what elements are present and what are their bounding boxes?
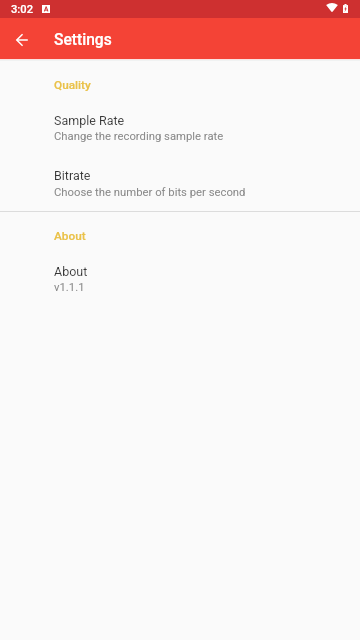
staticText: About [54, 229, 86, 243]
staticText: Settings [54, 31, 112, 49]
staticText: Choose the number of bits per second [54, 186, 246, 199]
staticText: Sample Rate [54, 113, 125, 128]
button[interactable]: About [0, 243, 360, 308]
staticText: v1.1.1 [54, 281, 85, 294]
button[interactable]: Bitrate [0, 157, 360, 211]
staticText: Quality [54, 78, 91, 92]
staticText: 3:02 [11, 3, 34, 16]
staticText: About [54, 264, 88, 279]
staticText: Change the recording sample rate [54, 130, 224, 143]
button[interactable]: Sample Rate [0, 92, 360, 157]
button[interactable]: Navigate up [4, 19, 40, 60]
staticText: Bitrate [54, 168, 91, 183]
